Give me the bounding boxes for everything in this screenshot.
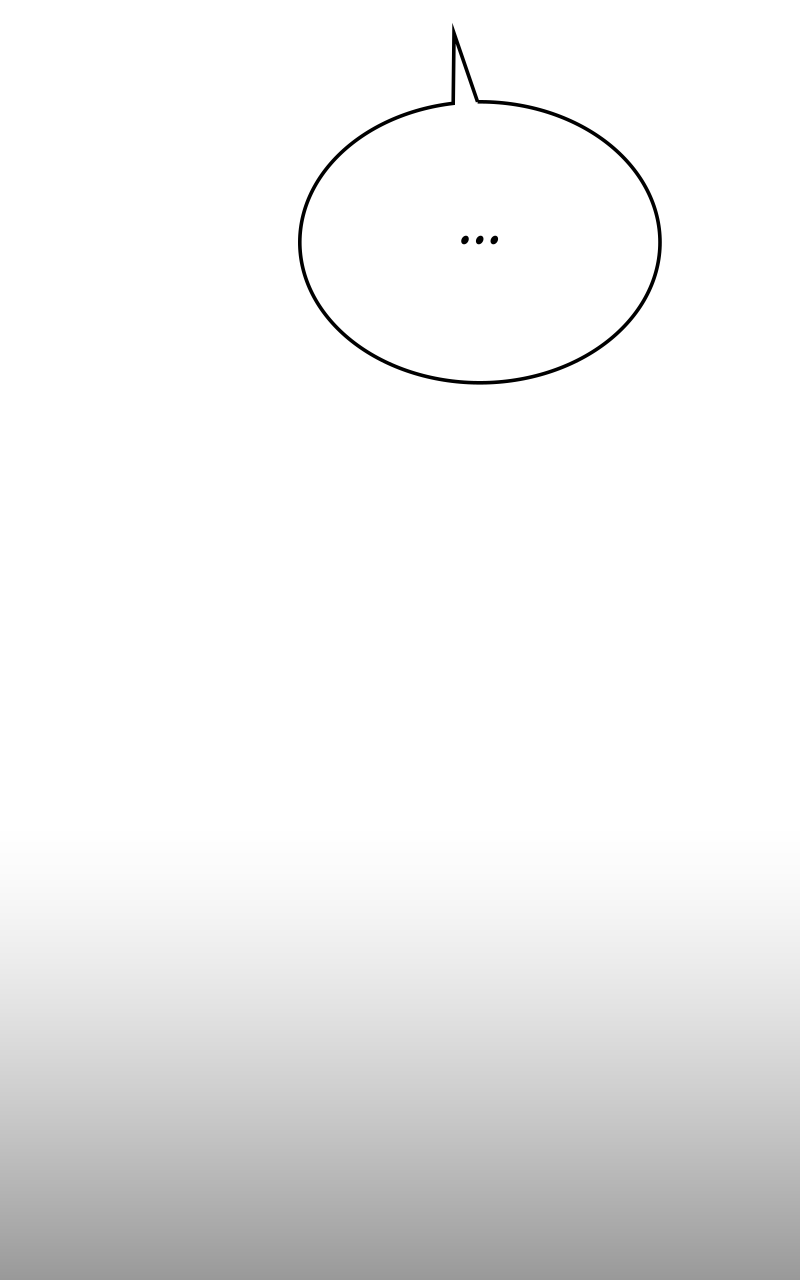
button[interactable]: Message [296,22,664,388]
